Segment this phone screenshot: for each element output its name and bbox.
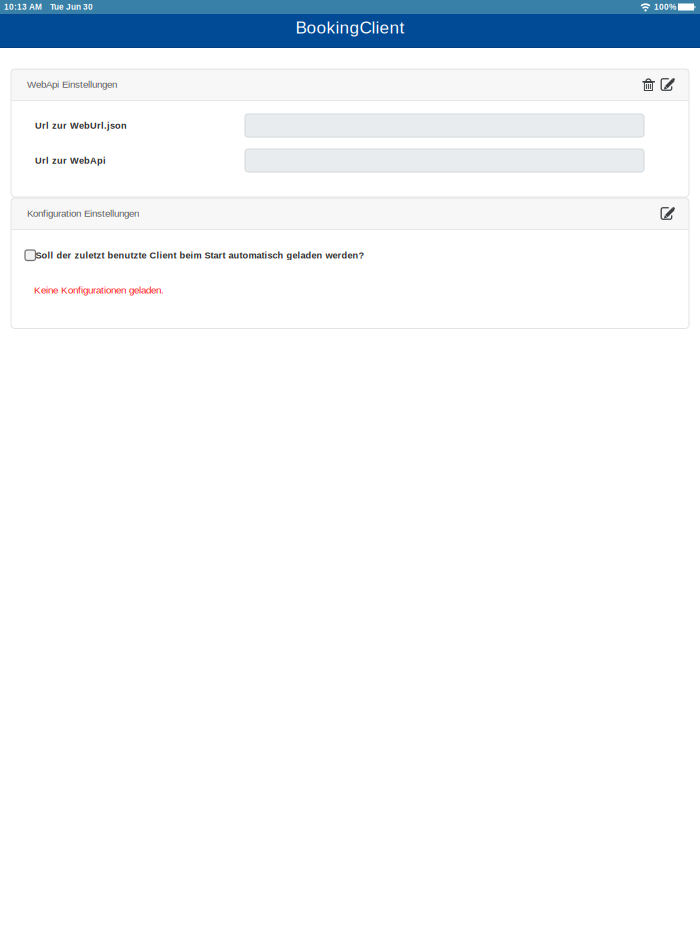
staticText: Tue Jun 30 — [50, 2, 93, 12]
staticText: 10:13 AM — [4, 2, 42, 12]
staticText: Url zur WebApi — [35, 155, 106, 166]
staticText: WebApi Einstellungen — [27, 79, 117, 90]
staticText: Keine Konfigurationen geladen. — [34, 284, 164, 295]
button[interactable]: Edit — [658, 74, 677, 95]
staticText: Url zur WebUrl.json — [35, 120, 127, 131]
button[interactable]: Soll der zuletzt benutzte Client beim St… — [11, 250, 689, 260]
staticText: Soll der zuletzt benutzte Client beim St… — [35, 250, 364, 260]
staticText: 100% — [654, 2, 676, 12]
button[interactable]: Edit — [658, 203, 677, 224]
staticText: BookingClient — [295, 18, 404, 37]
staticText: Konfiguration Einstellungen — [27, 208, 139, 219]
button[interactable]: Delete — [640, 73, 657, 95]
